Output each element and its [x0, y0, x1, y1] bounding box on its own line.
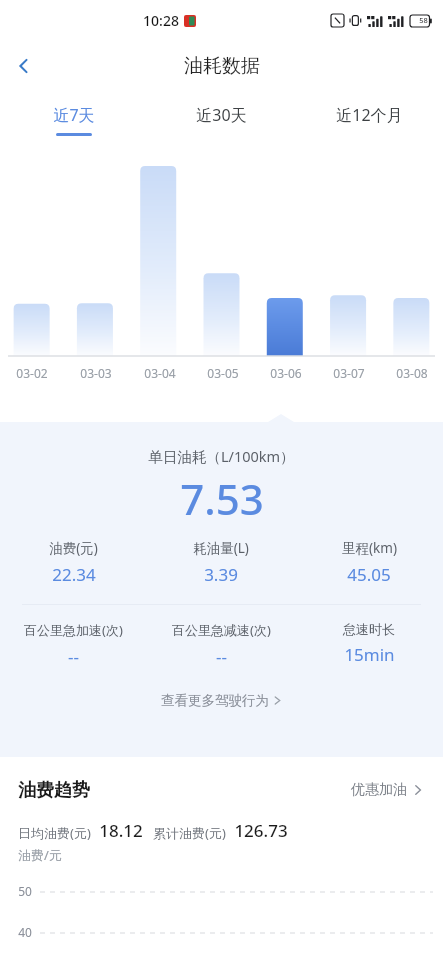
staticText: 03-06 [270, 365, 302, 381]
staticText: -- [68, 645, 79, 668]
staticText: 油费/元 [18, 846, 62, 864]
staticText: 近30天 [196, 104, 247, 126]
staticText: 油费(元) [49, 539, 98, 557]
staticText: 近7天 [53, 104, 95, 126]
staticText: 累计油费(元) [153, 824, 226, 842]
staticText: 油耗数据 [184, 54, 260, 78]
staticText: 日均油费(元) [18, 824, 91, 842]
staticText: 查看更多驾驶行为 [161, 692, 269, 709]
button[interactable]: 近12个月 [295, 92, 443, 148]
staticText: 7.53 [180, 470, 264, 527]
staticText: 单日油耗（L/100km） [148, 446, 295, 466]
staticText: 10:28 [143, 11, 179, 30]
staticText: 03-05 [207, 365, 239, 381]
staticText: 里程(km) [342, 539, 397, 557]
staticText: 18.12 [99, 819, 143, 842]
staticText: 百公里急减速(次) [172, 621, 271, 639]
staticText: 22.34 [52, 563, 96, 586]
staticText: 45.05 [347, 563, 391, 586]
button[interactable]: 近7天 [0, 92, 147, 148]
staticText: 03-07 [333, 365, 365, 381]
staticText: 怠速时长 [343, 621, 395, 637]
staticText: 03-03 [80, 365, 112, 381]
staticText: 03-08 [396, 365, 428, 381]
staticText: 126.73 [234, 819, 288, 842]
staticText: 3.39 [204, 563, 238, 586]
button[interactable]: Back [0, 42, 48, 90]
button[interactable]: 查看更多驾驶行为 [149, 688, 294, 713]
staticText: 03-02 [16, 365, 48, 381]
button[interactable]: 近30天 [147, 92, 295, 148]
staticText: 优惠加油 [351, 781, 407, 799]
staticText: 15min [344, 643, 395, 666]
staticText: 百公里急加速(次) [24, 621, 123, 639]
staticText: 40 [18, 924, 32, 940]
staticText: 油费趋势 [18, 779, 90, 802]
staticText: -- [216, 645, 227, 668]
staticText: 近12个月 [336, 104, 403, 126]
staticText: 耗油量(L) [193, 539, 249, 557]
staticText: 50 [18, 883, 32, 899]
button[interactable]: 优惠加油 [349, 777, 425, 803]
staticText: 58 [419, 15, 428, 25]
staticText: 03-04 [144, 365, 176, 381]
